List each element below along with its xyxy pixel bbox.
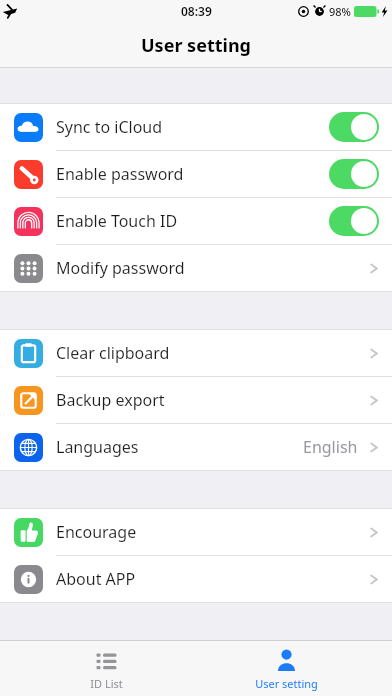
staticText: Encourage [56,521,137,543]
button[interactable]: About APP [0,556,392,602]
staticText: Clear clipboard [56,342,170,364]
staticText: Enable password [56,163,184,185]
staticText: ID List [90,676,123,691]
button[interactable]: Toggle on [329,159,379,189]
button[interactable]: Languages [0,424,392,470]
button[interactable]: Modify password [0,245,392,291]
button[interactable]: Encourage [0,509,392,555]
button[interactable]: Clear clipboard [0,330,392,376]
button[interactable]: Toggle on [329,206,379,236]
staticText: Sync to iCloud [56,116,163,138]
staticText: User setting [141,33,251,58]
button[interactable]: User setting [211,641,361,696]
button[interactable]: Enable Touch ID [0,198,392,244]
staticText: Backup export [56,389,165,411]
button[interactable]: Sync to iCloud [0,104,392,150]
staticText: 08:39 [181,3,212,19]
button[interactable]: Enable password [0,151,392,197]
button[interactable]: Toggle on [329,112,379,142]
staticText: User setting [255,676,318,691]
staticText: English [303,436,358,458]
staticText: About APP [56,568,136,590]
staticText: Languages [56,436,139,458]
staticText: 98% [329,4,351,19]
staticText: Modify password [56,257,185,279]
staticText: Enable Touch ID [56,210,178,232]
button[interactable]: Backup export [0,377,392,423]
button[interactable]: ID List [31,641,181,696]
